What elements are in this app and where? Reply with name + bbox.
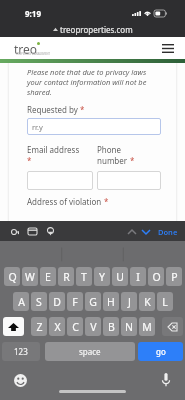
staticText: I <box>136 270 140 284</box>
button[interactable]: B <box>103 317 119 336</box>
staticText: number <box>97 155 128 166</box>
button[interactable]: H <box>103 292 119 311</box>
staticText: * <box>104 196 109 207</box>
button[interactable]: Backspace <box>162 317 183 336</box>
staticText: space <box>79 346 101 357</box>
staticText: 123 <box>14 346 28 357</box>
staticText: Q <box>8 270 17 284</box>
staticText: T <box>81 270 87 284</box>
staticText: * <box>80 104 85 115</box>
button[interactable]: G <box>85 292 101 311</box>
button[interactable]: Emoji <box>13 373 27 387</box>
staticText: C <box>72 320 79 334</box>
button[interactable]: P <box>166 267 182 286</box>
button[interactable]: C <box>67 317 83 336</box>
staticText: * <box>130 155 135 166</box>
staticText: Requested by <box>27 104 78 115</box>
staticText: Done <box>158 227 178 237</box>
staticText: V <box>90 320 97 334</box>
staticText: F <box>72 295 78 309</box>
staticText: Address of violation <box>27 196 102 207</box>
button[interactable]: go <box>138 342 183 361</box>
staticText: B <box>108 320 115 334</box>
staticText: O <box>152 270 161 284</box>
button[interactable]: Previous field <box>126 226 137 237</box>
staticText: go <box>156 346 166 357</box>
button[interactable]: Y <box>94 267 110 286</box>
staticText: Y <box>99 270 105 284</box>
button[interactable]: U <box>112 267 128 286</box>
button[interactable]: Z <box>31 317 47 336</box>
button[interactable]: space <box>45 342 135 361</box>
staticText: PROPERTIES MANAGEMENT <box>16 52 50 56</box>
staticText: Z <box>36 320 43 334</box>
button[interactable]: V <box>85 317 101 336</box>
button[interactable]: J <box>121 292 137 311</box>
button[interactable]: Location <box>42 223 59 240</box>
button[interactable]: Credit card <box>24 223 41 240</box>
button[interactable]: L <box>157 292 173 311</box>
staticText: K <box>144 295 151 309</box>
staticText: X <box>54 320 61 334</box>
staticText: H <box>107 295 115 309</box>
staticText: N <box>125 320 133 334</box>
staticText: M <box>142 320 152 334</box>
staticText: G <box>89 295 97 309</box>
staticText: L <box>162 295 168 309</box>
button[interactable]: D <box>49 292 65 311</box>
button[interactable]: Shift <box>3 317 24 336</box>
button[interactable]: K <box>139 292 155 311</box>
staticText: R <box>63 270 70 284</box>
staticText: D <box>53 295 61 309</box>
button[interactable] <box>27 171 93 190</box>
staticText: rr.y <box>32 122 43 132</box>
button[interactable]: W <box>22 267 38 286</box>
staticText: J <box>128 295 131 309</box>
staticText: Phone <box>97 144 122 155</box>
button[interactable]: 123 <box>2 342 40 361</box>
staticText: Please note that due to privacy laws you… <box>27 67 161 97</box>
button[interactable]: Q <box>4 267 20 286</box>
button[interactable]: rr.y <box>27 118 161 135</box>
button[interactable]: N <box>121 317 137 336</box>
staticText: S <box>36 295 42 309</box>
button[interactable]: A <box>13 292 29 311</box>
staticText: 9:19 <box>25 8 41 19</box>
staticText: Email address <box>27 144 80 155</box>
staticText: A <box>18 295 25 309</box>
button[interactable]: Dictation <box>159 373 173 387</box>
staticText: W <box>25 270 35 284</box>
staticText: treo <box>14 41 38 57</box>
staticText: U <box>116 270 124 284</box>
button[interactable]: Menu <box>162 44 174 53</box>
button[interactable] <box>97 171 161 190</box>
button[interactable]: M <box>139 317 155 336</box>
button[interactable]: Done <box>157 227 179 237</box>
button[interactable]: O <box>148 267 164 286</box>
button[interactable]: X <box>49 317 65 336</box>
button[interactable]: Next field <box>140 226 151 237</box>
button[interactable]: Passwords <box>6 223 23 240</box>
button[interactable]: R <box>58 267 74 286</box>
button[interactable]: T <box>76 267 92 286</box>
button[interactable]: I <box>130 267 146 286</box>
staticText: P <box>171 270 178 284</box>
staticText: E <box>45 270 51 284</box>
staticText: treoproperties.com <box>60 24 133 35</box>
button[interactable]: E <box>40 267 56 286</box>
button[interactable]: F <box>67 292 83 311</box>
staticText: * <box>27 155 32 166</box>
button[interactable]: S <box>31 292 47 311</box>
